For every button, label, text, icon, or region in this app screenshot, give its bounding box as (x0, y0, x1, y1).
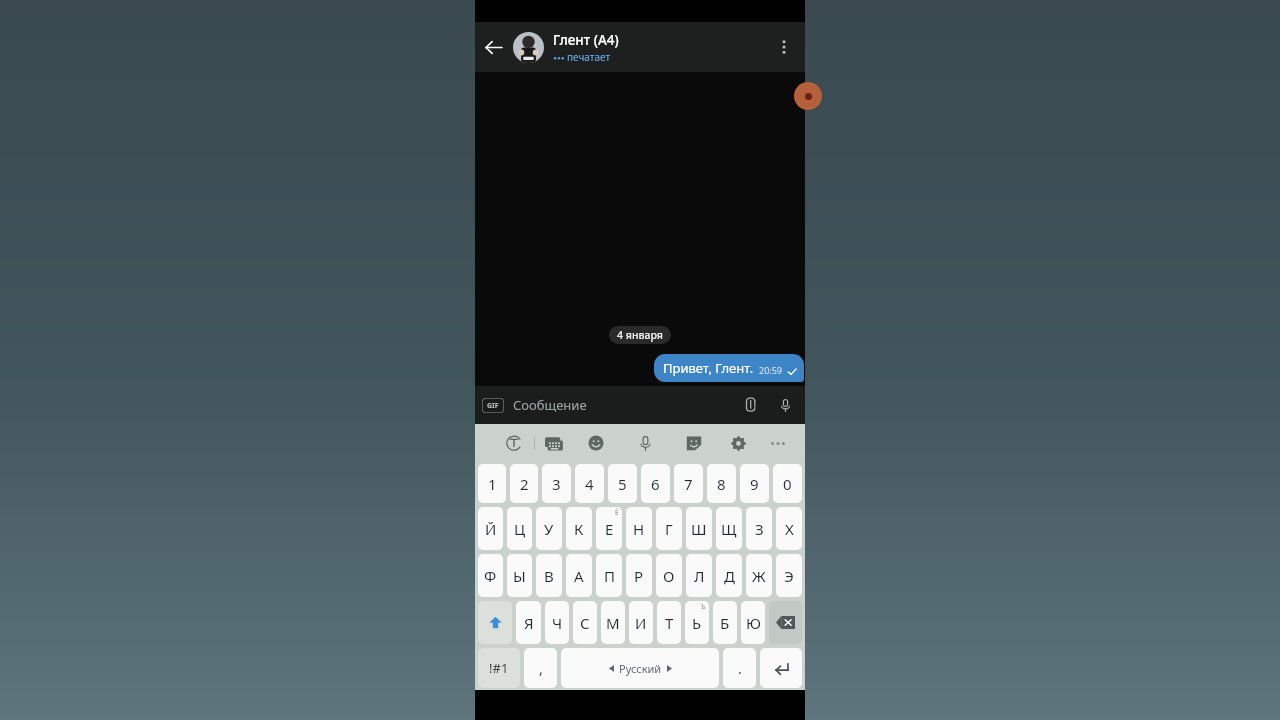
button[interactable]: 5 (608, 464, 637, 503)
button[interactable]: Ы (507, 554, 532, 597)
button[interactable]: Т (657, 601, 681, 644)
button[interactable]: А (566, 554, 592, 597)
button[interactable]: У (536, 507, 562, 550)
button[interactable]: Attach (734, 388, 768, 422)
button[interactable]: В (536, 554, 562, 597)
button[interactable]: 3 (542, 464, 571, 503)
button[interactable]: Ф (478, 554, 503, 597)
staticText: Ь (692, 613, 702, 633)
staticText: В (544, 566, 554, 586)
button[interactable]: Б (713, 601, 737, 644)
staticText: Р (634, 566, 644, 586)
button[interactable]: 8 (707, 464, 736, 503)
staticText: Ж (752, 566, 766, 586)
button[interactable]: О (656, 554, 682, 597)
button[interactable]: Й (478, 507, 503, 550)
button[interactable]: , (524, 648, 557, 688)
button[interactable]: . (723, 648, 756, 688)
button[interactable]: Emoji (581, 428, 611, 458)
button[interactable]: More (763, 428, 793, 458)
staticText: Привет, Глент. (663, 359, 754, 377)
button[interactable]: Н (626, 507, 652, 550)
staticText: 4 (585, 474, 594, 494)
staticText: Ё (615, 508, 619, 517)
button[interactable]: Э (776, 554, 802, 597)
button[interactable]: Щ (716, 507, 742, 550)
button[interactable]: Г (656, 507, 682, 550)
button[interactable]: Profile photo (513, 32, 544, 63)
staticText: К (574, 519, 584, 539)
staticText: Л (694, 566, 705, 586)
staticText: GIF (487, 401, 499, 411)
button[interactable]: Settings (723, 428, 753, 458)
button[interactable]: 1 (478, 464, 506, 503)
button[interactable]: Л (686, 554, 712, 597)
staticText: 0 (783, 474, 792, 494)
staticText: Ш (691, 519, 707, 539)
button[interactable]: Translate (499, 428, 529, 458)
button[interactable]: 6 (641, 464, 670, 503)
button[interactable]: Ю (741, 601, 765, 644)
button[interactable]: 9 (740, 464, 769, 503)
staticText: Э (784, 566, 794, 586)
button[interactable]: Р (626, 554, 652, 597)
button[interactable]: Space (561, 648, 719, 688)
staticText: Русский (619, 661, 662, 676)
button[interactable]: П (596, 554, 622, 597)
staticText: Ч (552, 613, 563, 633)
button[interactable]: Ц (507, 507, 532, 550)
button[interactable]: Ь (685, 601, 709, 644)
staticText: М (606, 613, 620, 633)
staticText: П (604, 566, 615, 586)
button[interactable]: Х (776, 507, 802, 550)
button[interactable]: Ш (686, 507, 712, 550)
button[interactable]: More options (766, 29, 802, 65)
staticText: 20:59 (759, 364, 783, 376)
staticText: С (580, 613, 590, 633)
button[interactable]: Привет, Глент. (654, 354, 804, 382)
button[interactable]: 0 (773, 464, 802, 503)
button[interactable]: Е (596, 507, 622, 550)
button[interactable]: К (566, 507, 592, 550)
staticText: 7 (684, 474, 693, 494)
button[interactable]: Ч (545, 601, 569, 644)
staticText: 4 января (617, 328, 663, 342)
button[interactable]: Keyboard modes (539, 428, 569, 458)
staticText: , (539, 659, 543, 678)
button[interactable]: Stickers (679, 428, 709, 458)
button[interactable]: Enter (760, 648, 802, 688)
button[interactable]: Voice input (630, 428, 660, 458)
staticText: Ф (484, 566, 497, 586)
button[interactable]: 7 (674, 464, 703, 503)
button[interactable]: М (601, 601, 625, 644)
staticText: Д (724, 566, 735, 586)
button[interactable]: GIF (482, 398, 504, 413)
button[interactable]: 4 (575, 464, 604, 503)
button[interactable]: 4 января (617, 328, 663, 342)
button[interactable]: Avatar (794, 82, 822, 110)
button[interactable]: Voice message (768, 388, 802, 422)
button[interactable]: Д (716, 554, 742, 597)
button[interactable]: 2 (510, 464, 538, 503)
staticText: !#1 (489, 659, 509, 677)
button[interactable]: !#1 (478, 648, 520, 688)
staticText: Ъ (701, 602, 706, 611)
button[interactable]: Ж (746, 554, 772, 597)
staticText: Сообщение (513, 396, 587, 414)
button[interactable]: Shift (478, 601, 512, 644)
staticText: Х (785, 519, 794, 539)
button[interactable]: Backspace (769, 601, 802, 644)
button[interactable]: С (573, 601, 597, 644)
button[interactable]: Back (475, 29, 511, 65)
button[interactable]: И (629, 601, 653, 644)
staticText: И (635, 613, 647, 633)
staticText: Ы (513, 566, 526, 586)
staticText: А (574, 566, 584, 586)
button[interactable]: Глент (A4) (553, 31, 766, 64)
staticText: Т (665, 613, 674, 633)
staticText: Б (720, 613, 730, 633)
staticText: Й (485, 519, 497, 539)
button[interactable]: З (746, 507, 772, 550)
button[interactable]: Сообщение (513, 396, 734, 414)
button[interactable]: Я (516, 601, 541, 644)
